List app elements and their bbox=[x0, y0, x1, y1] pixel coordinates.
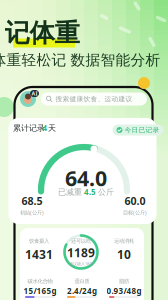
staticText: 今日已记录 bbox=[124, 126, 159, 134]
staticText: 0.93/48g bbox=[106, 285, 141, 296]
staticText: 饮食摄入 bbox=[29, 238, 49, 244]
staticText: 搜索健康饮食、运动建议 bbox=[55, 95, 132, 103]
staticText: 记体重 bbox=[4, 17, 79, 48]
staticText: 64.0 bbox=[65, 164, 107, 192]
staticText: 目标(公斤) bbox=[123, 209, 147, 216]
staticText: 1189 bbox=[67, 245, 95, 261]
staticText: 4 bbox=[42, 123, 47, 133]
staticText: 建议摄入1818 bbox=[69, 261, 93, 266]
staticText: 公斤 bbox=[98, 187, 114, 197]
staticText: 初始(公斤) bbox=[20, 209, 44, 216]
staticText: 10 bbox=[117, 246, 131, 262]
staticText: 累计记录 bbox=[13, 123, 45, 133]
staticText: 天 bbox=[48, 123, 56, 133]
staticText: 运动消耗 bbox=[114, 238, 134, 244]
staticText: 1431 bbox=[25, 246, 53, 262]
staticText: 体重轻松记 数据智能分析 bbox=[0, 51, 160, 69]
staticText: 还可以吃 bbox=[71, 238, 91, 244]
staticText: 60.0 bbox=[124, 194, 145, 208]
staticText: 15/165g bbox=[23, 285, 56, 296]
staticText: 4.5 bbox=[84, 187, 96, 197]
staticText: 已减重 bbox=[58, 187, 82, 197]
staticText: 2.4/24g bbox=[67, 285, 97, 296]
staticText: AI bbox=[31, 90, 37, 97]
staticText: 脂肪 bbox=[119, 278, 129, 284]
button[interactable]: 搜索健康饮食、运动建议 bbox=[41, 92, 147, 105]
staticText: 碳水化合物 bbox=[27, 278, 52, 284]
staticText: 68.5 bbox=[21, 194, 42, 208]
button[interactable]: 个人头像 bbox=[20, 91, 36, 107]
staticText: 蛋白质 bbox=[74, 278, 89, 284]
